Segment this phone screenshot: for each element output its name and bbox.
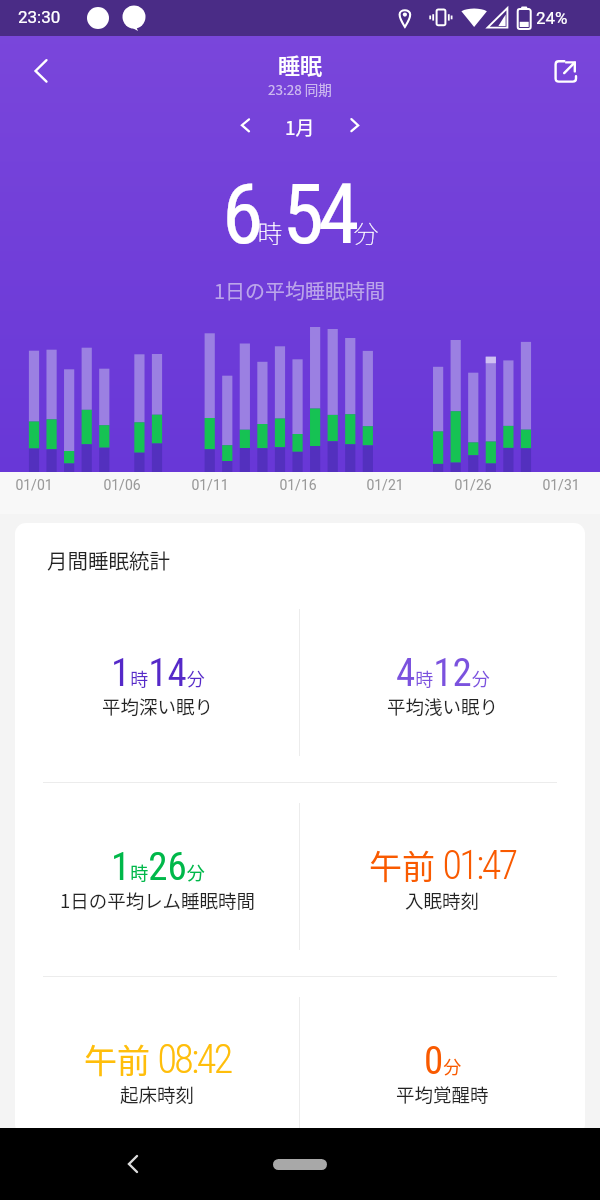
- staticText: 01/01: [4, 477, 64, 493]
- button[interactable]: Share: [540, 46, 590, 96]
- staticText: 24%: [536, 8, 568, 28]
- staticText: 平均深い眠り: [102, 693, 214, 720]
- staticText: 01/06: [92, 477, 152, 493]
- staticText: 睡眠: [278, 48, 323, 80]
- staticText: 6時54分: [222, 165, 379, 263]
- staticText: 01/26: [443, 477, 503, 493]
- button[interactable]: 4時12分: [300, 587, 585, 781]
- staticText: 1月: [285, 113, 315, 141]
- staticText: 午前 01:47: [369, 841, 516, 889]
- staticText: 入眠時刻: [405, 887, 480, 914]
- staticText: 平均浅い眠り: [387, 693, 499, 720]
- button[interactable]: 1時14分: [15, 587, 300, 781]
- button[interactable]: Back: [110, 1142, 154, 1186]
- button[interactable]: Back: [12, 42, 62, 92]
- staticText: 1日の平均レム睡眠時間: [60, 887, 255, 914]
- staticText: 01/16: [268, 477, 328, 493]
- button[interactable]: Previous month: [225, 105, 265, 145]
- staticText: 起床時刻: [120, 1081, 195, 1108]
- button[interactable]: 午前 08:42: [15, 975, 300, 1135]
- staticText: 01/31: [531, 477, 591, 493]
- staticText: 月間睡眠統計: [47, 545, 170, 575]
- staticText: 4時12分: [396, 650, 490, 696]
- staticText: 0分: [424, 1038, 462, 1084]
- staticText: 1時14分: [111, 650, 205, 696]
- button[interactable]: 0分: [300, 975, 585, 1135]
- staticText: 1時26分: [111, 844, 205, 890]
- staticText: 平均覚醒時: [396, 1081, 489, 1108]
- staticText: 01/21: [355, 477, 415, 493]
- staticText: 23:28 同期: [268, 79, 332, 99]
- button[interactable]: Next month: [335, 105, 375, 145]
- staticText: 23:30: [18, 7, 61, 27]
- staticText: 午前 08:42: [84, 1035, 231, 1083]
- button[interactable]: 1時26分: [15, 781, 300, 975]
- staticText: 01/11: [180, 477, 240, 493]
- staticText: 1日の平均睡眠時間: [214, 276, 386, 305]
- button[interactable]: Home: [273, 1159, 327, 1170]
- button[interactable]: 午前 01:47: [300, 781, 585, 975]
